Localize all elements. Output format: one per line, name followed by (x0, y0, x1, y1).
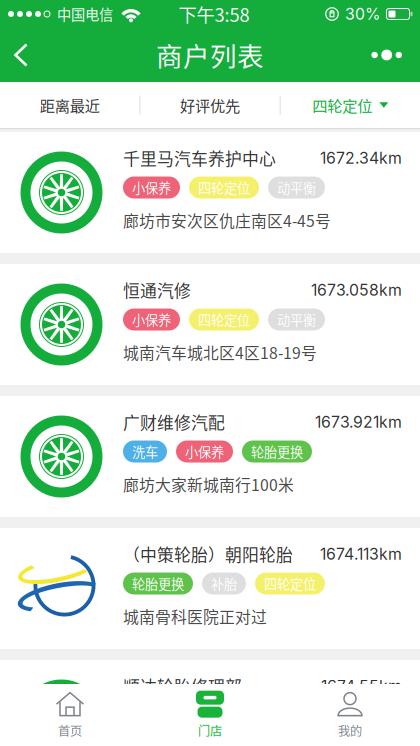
staticText: 四轮定位 (198, 178, 250, 197)
staticText: 30% (345, 4, 381, 23)
button[interactable]: 我的 (280, 691, 420, 739)
staticText: 补胎 (211, 574, 237, 593)
staticText: 轮胎更换 (132, 574, 184, 593)
staticText: 商户列表 (156, 36, 264, 74)
staticText: 廊坊大家新城南行100米 (123, 473, 294, 495)
staticText: 顺达轮胎修理部 (123, 674, 242, 698)
button[interactable]: 四轮定位 (281, 82, 420, 128)
staticText: 1674.55km (321, 676, 402, 695)
button[interactable]: 距离最近 (0, 82, 139, 128)
staticText: 小保养 (132, 310, 171, 329)
staticText: 动平衡 (277, 310, 316, 329)
staticText: 小保养 (132, 178, 171, 197)
staticText: 四轮定位 (198, 310, 250, 329)
staticText: 好评优先 (180, 94, 240, 116)
staticText: 四轮定位 (312, 94, 372, 116)
staticText: 千里马汽车养护中心 (123, 146, 276, 170)
staticText: 城南汽车城北区4区18-19号 (123, 341, 317, 363)
staticText: 小保养 (185, 442, 224, 461)
button[interactable]: 门店 (140, 691, 280, 739)
staticText: 1674.113km (320, 544, 402, 563)
button[interactable]: 恒通汽修 (0, 264, 420, 385)
staticText: 四轮定位 (264, 574, 316, 593)
staticText: 1673.058km (311, 280, 402, 299)
button[interactable]: 好评优先 (140, 82, 280, 128)
button[interactable]: 更多 (357, 28, 420, 82)
staticText: 门店 (198, 722, 222, 739)
staticText: （中策轮胎）朝阳轮胎 (123, 542, 293, 566)
button[interactable]: 顺达轮胎修理部 (0, 660, 420, 746)
button[interactable]: 千里马汽车养护中心 (0, 132, 420, 253)
staticText: 廊坊市安次区仇庄南区4-45号 (123, 209, 331, 231)
staticText: 广财维修汽配 (123, 410, 225, 434)
button[interactable]: 返回 (0, 28, 41, 82)
button[interactable]: 广财维修汽配 (0, 396, 420, 517)
button[interactable]: （中策轮胎）朝阳轮胎 (0, 528, 420, 649)
staticText: 下午3:58 (178, 1, 249, 27)
staticText: 首页 (58, 722, 82, 739)
staticText: 距离最近 (40, 94, 100, 116)
staticText: 轮胎更换 (251, 442, 303, 461)
staticText: 洗车 (132, 442, 158, 461)
staticText: 恒通汽修 (123, 278, 191, 302)
staticText: 1672.34km (320, 148, 402, 167)
staticText: 我的 (338, 722, 362, 739)
staticText: 小保养 (185, 706, 224, 725)
staticText: 1673.921km (315, 412, 402, 431)
staticText: 中国电信 (57, 4, 113, 24)
button[interactable]: 首页 (0, 691, 140, 739)
staticText: 城南骨科医院正对过 (123, 605, 267, 627)
staticText: 动平衡 (277, 178, 316, 197)
